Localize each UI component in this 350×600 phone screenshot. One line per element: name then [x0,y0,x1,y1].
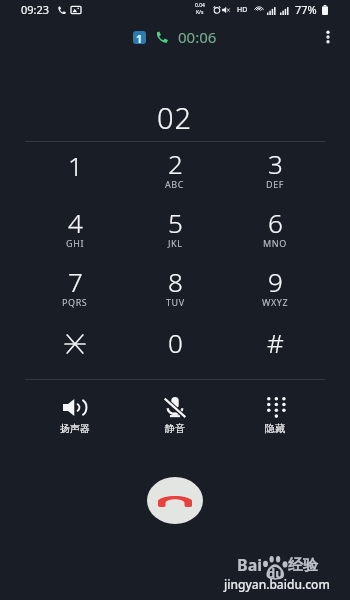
staticText: 经验 [288,556,318,575]
staticText: GHI [66,237,85,249]
staticText: 77% [295,2,317,17]
button[interactable]: 扬声器 [25,396,125,436]
staticText: K/s [196,9,204,16]
button[interactable]: 8 [125,255,225,314]
button[interactable]: 7 [25,255,125,314]
staticText: 静音 [165,422,185,435]
staticText: 扬声器 [60,422,90,435]
button[interactable]: 5 [125,196,225,255]
staticText: Bai [237,554,263,576]
button[interactable]: End call [147,477,203,524]
staticText: ABC [165,178,185,190]
staticText: DEF [266,178,285,190]
button[interactable]: 6 [225,196,325,255]
button[interactable]: 静音 [125,396,225,436]
staticText: du [267,564,284,582]
staticText: 7 [68,264,83,299]
staticText: 5 [168,205,183,240]
staticText: 1 [68,148,83,183]
staticText: 02 [157,98,193,137]
staticText: 00:06 [178,27,217,47]
staticText: WXYZ [262,296,289,308]
button[interactable]: 隐藏 [225,396,325,436]
staticText: 隐藏 [265,422,285,435]
staticText: 0 [168,325,183,360]
staticText: TUV [166,296,185,308]
button[interactable]: 2 [125,137,225,196]
staticText: 1 [136,31,143,44]
staticText: jingyan.baidu.com [224,576,330,592]
button[interactable]: More options [314,23,342,51]
staticText: 9 [268,264,283,299]
button[interactable]: 1 [25,137,125,196]
button[interactable]: 3 [225,137,325,196]
button[interactable] [25,314,125,373]
staticText: 6 [268,205,283,240]
staticText: PQRS [62,296,88,308]
button[interactable]: 9 [225,255,325,314]
button[interactable]: 0 [125,314,225,373]
staticText: HD [237,5,248,15]
staticText: 8 [168,264,183,299]
staticText: 4 [68,205,83,240]
staticText: 09:23 [21,2,50,17]
button[interactable]: # [225,314,325,373]
staticText: JKL [168,237,183,249]
staticText: # [267,325,284,360]
staticText: 0.04 [195,2,205,9]
staticText: MNO [263,237,287,249]
staticText: 3 [268,146,283,181]
staticText: 2 [168,146,183,181]
button[interactable]: 4 [25,196,125,255]
